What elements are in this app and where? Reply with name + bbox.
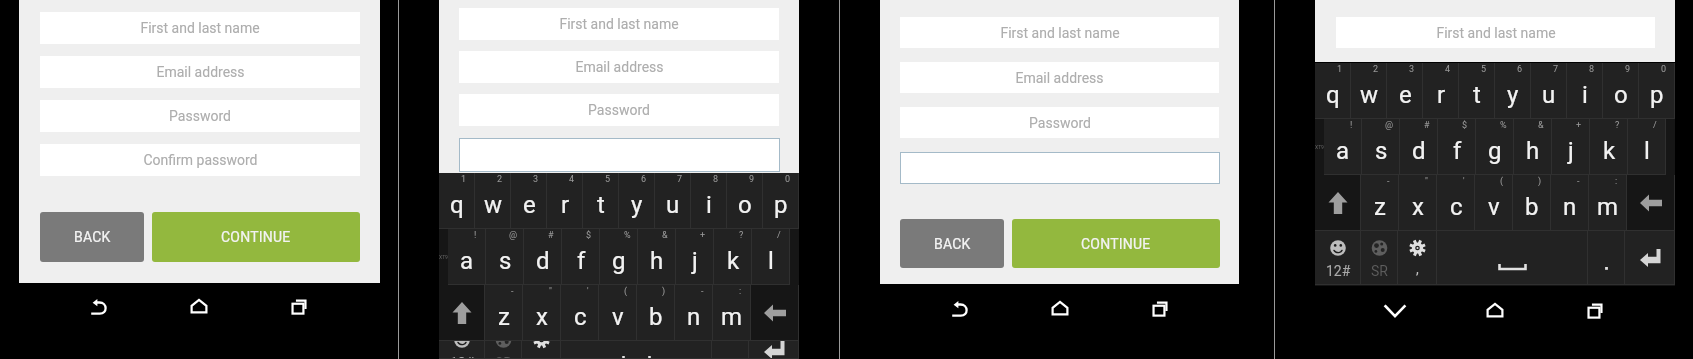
button[interactable]: Enter [1625, 231, 1675, 285]
button[interactable]: Email address [40, 56, 360, 88]
button[interactable]: - [675, 285, 713, 341]
button[interactable]: 6 [1495, 63, 1531, 119]
button[interactable]: Password [900, 107, 1219, 138]
button[interactable]: Shift [1315, 175, 1361, 231]
staticText: Confirm password [143, 152, 258, 168]
button[interactable]: Home [1466, 282, 1524, 340]
button[interactable]: 4 [547, 173, 583, 229]
button[interactable]: 2 [1351, 63, 1387, 119]
button[interactable]: ( [1475, 175, 1513, 231]
button[interactable]: + [1552, 119, 1590, 175]
button[interactable]: Hide keyboard [1366, 282, 1424, 340]
button[interactable]: % [600, 229, 638, 285]
button[interactable]: $ [562, 229, 600, 285]
button[interactable]: 8 [1567, 63, 1603, 119]
button[interactable]: Settings [522, 341, 561, 359]
button[interactable]: 1 [1315, 63, 1351, 119]
button[interactable]: First and last name [40, 12, 360, 44]
button[interactable]: : [713, 285, 751, 341]
button[interactable]: " [523, 285, 561, 341]
staticText: n [687, 303, 701, 331]
button[interactable]: Confirm password [40, 144, 360, 176]
button[interactable]: Password [40, 100, 360, 132]
button[interactable]: First and last name [459, 8, 779, 40]
button[interactable]: & [1514, 119, 1552, 175]
button[interactable]: Enter [749, 341, 799, 359]
button[interactable]: / [752, 229, 790, 285]
button[interactable]: Back [931, 280, 989, 338]
button[interactable]: / [1628, 119, 1666, 175]
button[interactable]: 3 [511, 173, 547, 229]
button[interactable]: Space [561, 341, 712, 359]
button[interactable]: - [1551, 175, 1589, 231]
button[interactable]: CONTINUE [1012, 219, 1220, 268]
button[interactable]: BACK [900, 219, 1004, 268]
button[interactable]: Home [170, 278, 228, 336]
button[interactable]: 0 [1639, 63, 1675, 119]
staticText: , [540, 353, 543, 359]
button[interactable]: 2 [475, 173, 511, 229]
button[interactable]: " [1399, 175, 1437, 231]
button[interactable]: Home [1031, 280, 1089, 338]
button[interactable]: + [676, 229, 714, 285]
button[interactable]: Settings [1398, 231, 1437, 285]
button[interactable]: ) [1513, 175, 1551, 231]
button[interactable]: Change language [1361, 231, 1398, 285]
button[interactable]: Recent apps [270, 278, 328, 336]
button[interactable]: @ [1362, 119, 1400, 175]
button[interactable]: Symbols [1315, 231, 1361, 285]
button[interactable]: 9 [727, 173, 763, 229]
button[interactable]: ! [1324, 119, 1362, 175]
button[interactable]: ' [561, 285, 599, 341]
button[interactable]: Backspace [1627, 175, 1675, 231]
button[interactable]: ? [714, 229, 752, 285]
button[interactable]: Symbols [439, 341, 485, 359]
button[interactable]: Back [70, 278, 128, 336]
button[interactable]: ? [1590, 119, 1628, 175]
button[interactable]: - [485, 285, 523, 341]
button[interactable]: 3 [1387, 63, 1423, 119]
button[interactable]: Backspace [751, 285, 799, 341]
button[interactable]: @ [486, 229, 524, 285]
button[interactable]: 5 [1459, 63, 1495, 119]
button[interactable]: Password [459, 94, 779, 126]
button[interactable]: & [638, 229, 676, 285]
button[interactable]: ) [637, 285, 675, 341]
button[interactable]: Email address [459, 51, 779, 83]
button[interactable]: 8 [691, 173, 727, 229]
button[interactable]: Recent apps [1131, 280, 1189, 338]
button[interactable]: First and last name [900, 17, 1219, 48]
button[interactable]: Shift [439, 285, 485, 341]
button[interactable]: ! [448, 229, 486, 285]
button[interactable]: ( [599, 285, 637, 341]
button[interactable]: 1 [439, 173, 475, 229]
staticText: 3 [533, 174, 539, 185]
button[interactable] [900, 152, 1220, 184]
button[interactable]: 9 [1603, 63, 1639, 119]
button[interactable]: Recent apps [1566, 282, 1624, 340]
button[interactable]: BACK [40, 212, 144, 262]
button[interactable]: $ [1438, 119, 1476, 175]
button[interactable]: 5 [583, 173, 619, 229]
button[interactable]: Period [1588, 231, 1625, 285]
button[interactable]: Email address [900, 62, 1219, 93]
staticText: 9 [1625, 64, 1631, 75]
button[interactable]: # [1400, 119, 1438, 175]
button[interactable]: 7 [655, 173, 691, 229]
button[interactable]: % [1476, 119, 1514, 175]
button[interactable]: First and last name [1336, 17, 1655, 48]
button[interactable]: ' [1437, 175, 1475, 231]
button[interactable]: # [524, 229, 562, 285]
staticText: First and last name [1000, 25, 1120, 41]
button[interactable]: 7 [1531, 63, 1567, 119]
button[interactable]: Space [1437, 231, 1588, 285]
button[interactable]: Period [712, 341, 749, 359]
button[interactable]: 0 [763, 173, 799, 229]
button[interactable]: : [1589, 175, 1627, 231]
button[interactable]: 6 [619, 173, 655, 229]
button[interactable]: Change language [485, 341, 522, 359]
button[interactable]: 4 [1423, 63, 1459, 119]
button[interactable] [459, 138, 780, 172]
button[interactable]: - [1361, 175, 1399, 231]
button[interactable]: CONTINUE [152, 212, 360, 262]
